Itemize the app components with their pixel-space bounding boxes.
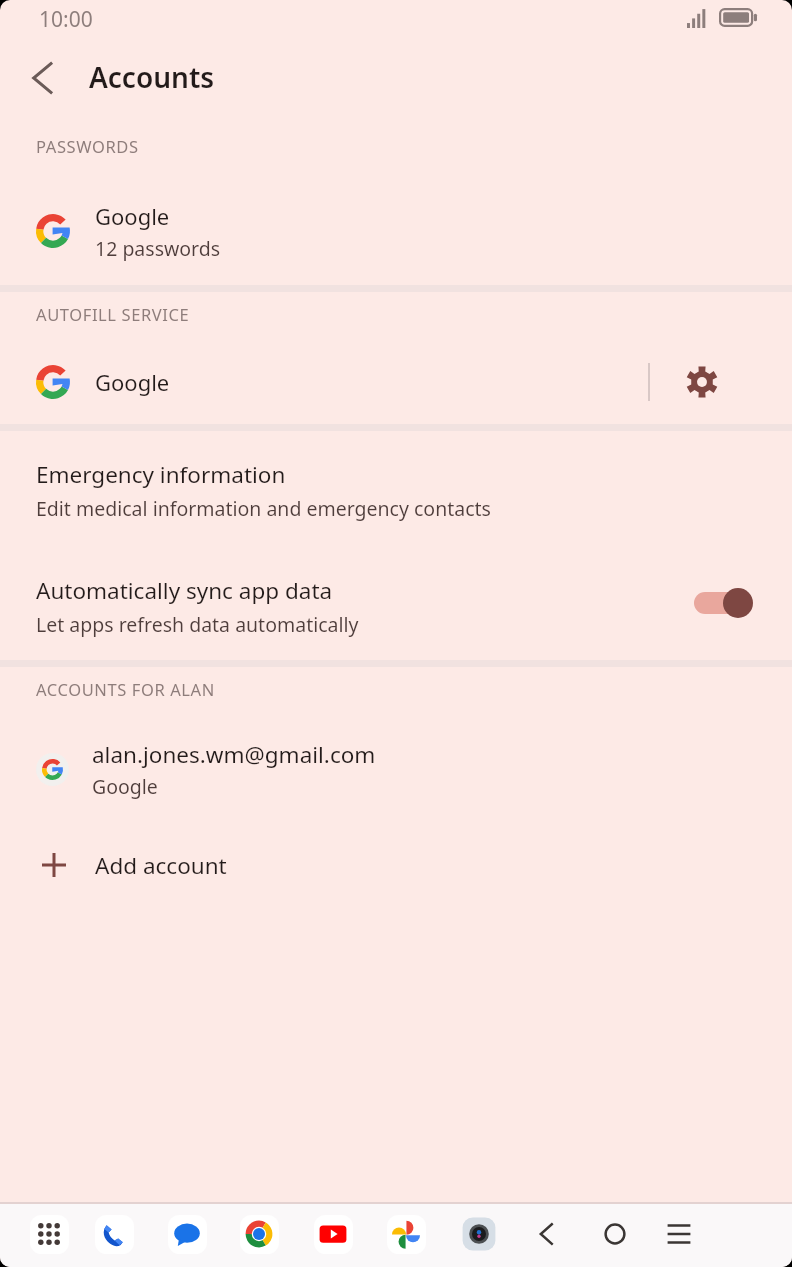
button[interactable]: YouTube [309, 1210, 357, 1258]
button[interactable]: Recent apps [655, 1210, 703, 1258]
staticText: ACCOUNTS FOR ALAN [36, 678, 215, 700]
button[interactable]: Camera [455, 1210, 503, 1258]
staticText: AUTOFILL SERVICE [36, 303, 190, 325]
button[interactable]: Chrome [235, 1210, 283, 1258]
button[interactable]: Back [16, 52, 68, 104]
button[interactable]: Google [0, 351, 648, 413]
button[interactable]: Back [523, 1210, 571, 1258]
button[interactable]: Messages [163, 1210, 211, 1258]
staticText: Google [95, 367, 170, 397]
staticText: alan.jones.wm@gmail.com [92, 739, 376, 770]
button[interactable]: Emergency information [0, 451, 792, 535]
button[interactable]: alan.jones.wm@gmail.com [0, 728, 792, 810]
button[interactable]: Autofill settings [650, 351, 792, 413]
staticText: Edit medical information and emergency c… [36, 495, 491, 522]
staticText: Let apps refresh data automatically [36, 611, 359, 638]
staticText: Google [95, 201, 170, 231]
staticText: Automatically sync app data [36, 575, 333, 606]
staticText: Accounts [89, 58, 215, 96]
button[interactable]: Google [0, 190, 792, 272]
button[interactable]: Photos [382, 1210, 430, 1258]
staticText: 10:00 [39, 5, 93, 34]
button[interactable]: Add account [0, 834, 792, 896]
button[interactable]: All apps [25, 1210, 73, 1258]
button[interactable]: Phone [90, 1210, 138, 1258]
button[interactable]: Home [591, 1210, 639, 1258]
staticText: PASSWORDS [36, 135, 139, 157]
staticText: Add account [95, 850, 227, 881]
button[interactable]: Automatically sync app data [0, 564, 792, 648]
staticText: Emergency information [36, 459, 286, 490]
staticText: 12 passwords [95, 235, 221, 262]
button[interactable]: Automatically sync app data toggle [694, 583, 753, 623]
staticText: Google [92, 773, 158, 800]
